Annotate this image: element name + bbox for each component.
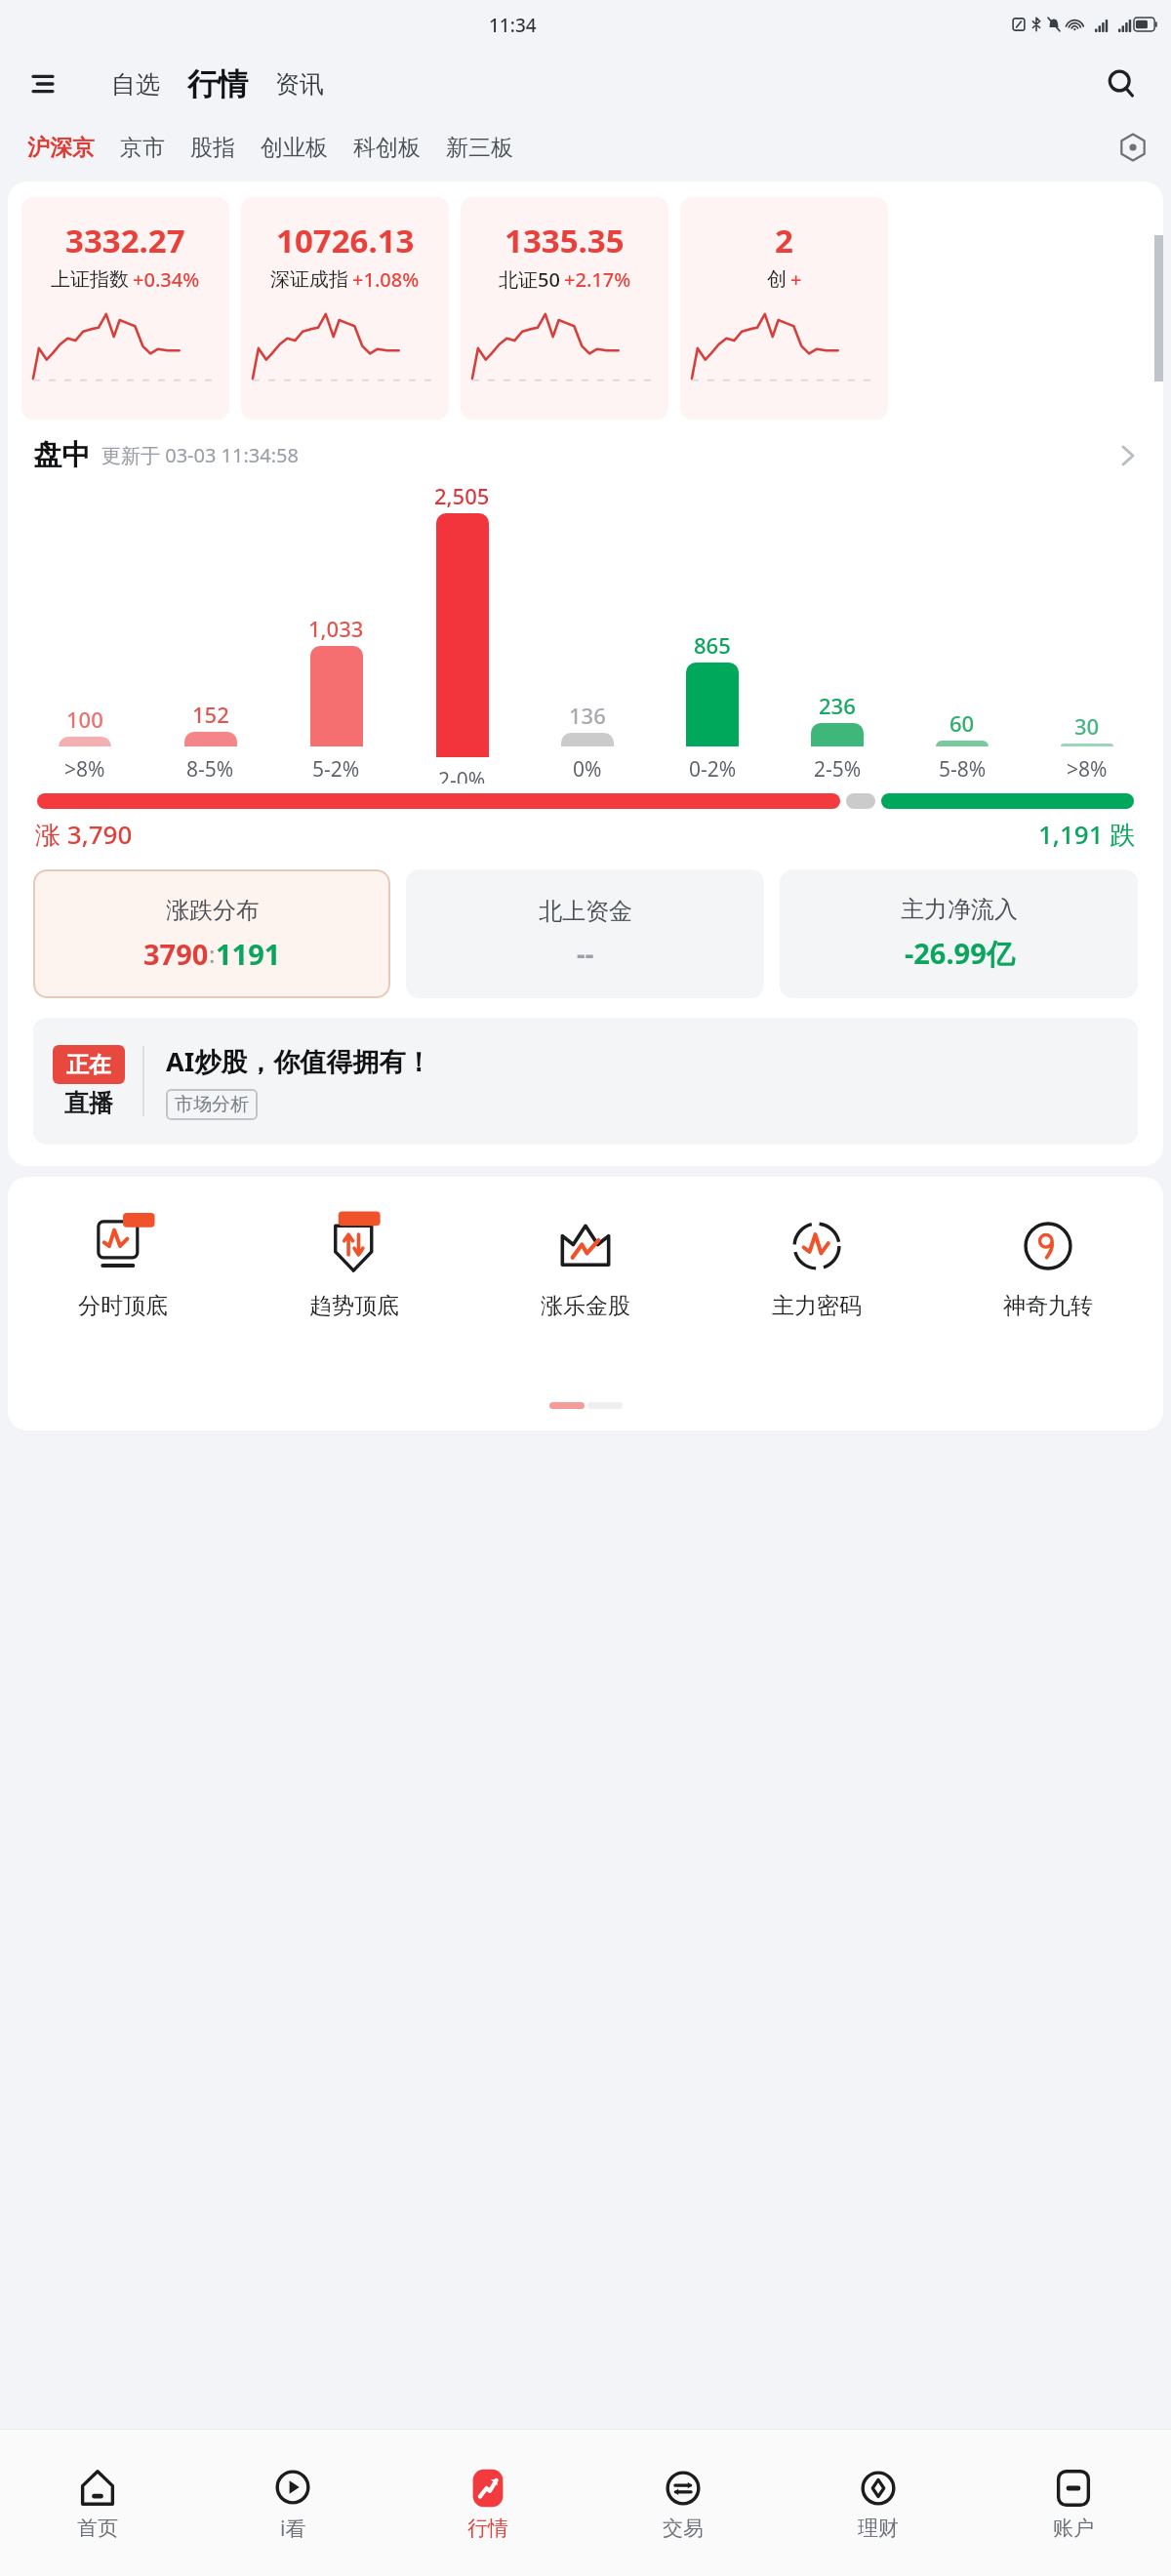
staticText: AI炒股，你值得拥有！ [166, 1043, 432, 1079]
staticText: 3790 [143, 935, 209, 973]
staticText: 2-5% [814, 755, 862, 784]
button[interactable]: 1335.35 [461, 197, 668, 420]
button[interactable]: 3332.27 [21, 197, 229, 420]
button[interactable]: 行情 [390, 2430, 585, 2576]
staticText: 0% [573, 755, 602, 784]
staticText: 北上资金 [539, 897, 632, 926]
staticText: -- [577, 936, 594, 972]
staticText: 8-5% [186, 755, 234, 784]
staticText: 上证指数 [51, 267, 129, 292]
staticText: 神奇九转 [1003, 1292, 1093, 1320]
staticText: 1335.35 [505, 219, 625, 262]
staticText: 更新于 03-03 11:34:58 [101, 442, 299, 468]
staticText: 2,505 [434, 481, 490, 510]
staticText: 股指 [190, 134, 235, 162]
staticText: 865 [694, 630, 731, 660]
button[interactable]: 北上资金 [406, 869, 764, 998]
button[interactable]: 趋势顶底 [238, 1210, 469, 1320]
button[interactable]: 神奇九转 [932, 1210, 1163, 1320]
staticText: >8% [64, 755, 105, 784]
staticText: 交易 [663, 2516, 704, 2541]
button[interactable]: 行情 [183, 61, 252, 107]
staticText: 152 [192, 700, 229, 729]
button[interactable]: 理财 [781, 2430, 976, 2576]
staticText: 自选 [111, 69, 160, 100]
staticText: 0-2% [689, 755, 737, 784]
staticText: i看 [280, 2515, 306, 2543]
staticText: + [790, 266, 802, 293]
staticText: -26.99亿 [905, 934, 1015, 973]
staticText: 趋势顶底 [309, 1292, 399, 1320]
staticText: 1191 [216, 935, 281, 973]
staticText: 136 [569, 701, 606, 730]
staticText: 涨乐金股 [541, 1292, 630, 1320]
button[interactable]: 账户 [976, 2430, 1171, 2576]
button[interactable]: 首页 [0, 2430, 195, 2576]
staticText: 京市 [120, 134, 165, 162]
staticText: 5-2% [312, 755, 360, 784]
staticText: 创业板 [261, 134, 328, 162]
staticText: 5-8% [939, 755, 987, 784]
button[interactable]: 主力净流入 [780, 869, 1138, 998]
button[interactable]: 盘中 [33, 437, 1138, 473]
button[interactable]: 2 [680, 197, 888, 420]
staticText: 主力密码 [772, 1292, 862, 1320]
staticText: +0.34% [133, 266, 200, 293]
button[interactable]: 沪深京 [21, 128, 101, 168]
staticText: 行情 [187, 65, 248, 103]
staticText: 深证成指 [270, 267, 348, 292]
button[interactable]: Search [1097, 60, 1146, 108]
staticText: +1.08% [352, 266, 420, 293]
staticText: 理财 [858, 2516, 899, 2541]
staticText: 涨 3,790 [35, 817, 133, 852]
staticText: >8% [1067, 755, 1108, 784]
button[interactable]: Edit categories [1110, 125, 1155, 170]
staticText: 市场分析 [175, 1093, 249, 1116]
staticText: 科创板 [353, 134, 421, 162]
staticText: 账户 [1053, 2516, 1094, 2541]
button[interactable]: i看 [195, 2430, 390, 2576]
button[interactable]: 创业板 [255, 128, 334, 168]
staticText: 100 [66, 704, 103, 734]
button[interactable]: 自选 [105, 63, 166, 105]
button[interactable]: 分时顶底 [8, 1210, 238, 1320]
staticText: 沪深京 [27, 134, 95, 162]
staticText: 236 [819, 691, 856, 720]
staticText: 首页 [77, 2516, 118, 2541]
staticText: 主力净流入 [901, 895, 1018, 924]
staticText: 涨跌分布 [166, 896, 260, 925]
button[interactable]: 交易 [585, 2430, 781, 2576]
staticText: 11:34 [489, 13, 537, 38]
staticText: 2-0% [438, 766, 486, 784]
button[interactable]: 10726.13 [241, 197, 449, 420]
staticText: 60 [949, 708, 975, 738]
staticText: 1,191 跌 [1038, 817, 1136, 852]
staticText: 创 [767, 267, 787, 292]
staticText: 资讯 [275, 69, 324, 100]
staticText: 分时顶底 [78, 1292, 168, 1320]
button[interactable]: 涨跌分布 [33, 869, 390, 998]
staticText: 3332.27 [65, 219, 185, 262]
button[interactable]: 股指 [184, 128, 241, 168]
staticText: : [209, 938, 216, 970]
staticText: 正在 [66, 1051, 111, 1079]
staticText: 行情 [467, 2516, 508, 2541]
staticText: 直播 [64, 1088, 113, 1118]
staticText: 2 [775, 219, 793, 262]
staticText: 北证50 [499, 266, 560, 293]
button[interactable]: 科创板 [347, 128, 426, 168]
button[interactable]: 主力密码 [701, 1210, 932, 1320]
staticText: 30 [1074, 711, 1100, 741]
button[interactable]: 资讯 [269, 63, 330, 105]
staticText: 盘中 [33, 437, 90, 473]
staticText: +2.17% [564, 266, 631, 293]
staticText: 1,033 [308, 614, 364, 643]
button[interactable]: Menu [21, 62, 64, 105]
button[interactable]: 涨乐金股 [469, 1210, 701, 1320]
button[interactable]: 京市 [114, 128, 171, 168]
staticText: 新三板 [446, 134, 513, 162]
button[interactable]: 新三板 [440, 128, 519, 168]
button[interactable]: 正在 [33, 1018, 1138, 1145]
staticText: 10726.13 [276, 219, 415, 262]
